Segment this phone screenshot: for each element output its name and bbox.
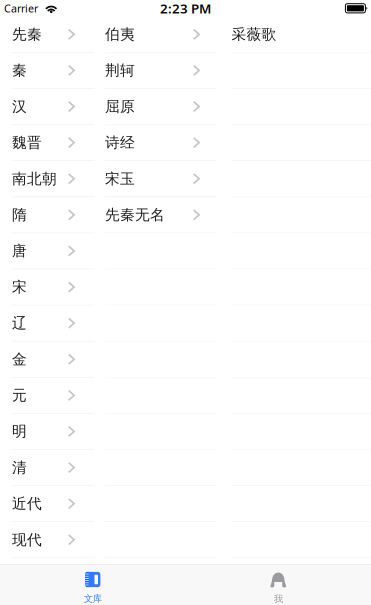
staticText: 汉 <box>12 97 27 115</box>
staticText: 伯夷 <box>105 25 135 43</box>
button[interactable]: 宋玉 <box>94 161 216 197</box>
button[interactable]: 先秦 <box>0 17 94 53</box>
staticText: 先秦无名 <box>105 206 165 224</box>
button[interactable]: 我 <box>185 565 371 605</box>
staticText: 屈原 <box>105 97 135 115</box>
staticText: 文库 <box>84 593 102 604</box>
button[interactable]: 采薇歌 <box>216 17 371 53</box>
staticText: 隋 <box>12 206 27 224</box>
staticText: 诗经 <box>105 134 135 152</box>
staticText: 魏晋 <box>12 134 42 152</box>
button[interactable]: 隋 <box>0 197 94 233</box>
staticText: 宋 <box>12 278 27 296</box>
button[interactable]: 伯夷 <box>94 17 216 53</box>
button[interactable]: 明 <box>0 414 94 450</box>
button[interactable]: 南北朝 <box>0 161 94 197</box>
button[interactable]: 魏晋 <box>0 125 94 161</box>
staticText: 2:23 PM <box>160 0 211 17</box>
staticText: 近代 <box>12 495 42 513</box>
button[interactable]: 文库 <box>0 565 185 605</box>
button[interactable]: 宋 <box>0 269 94 305</box>
staticText: 清 <box>12 458 27 476</box>
staticText: 采薇歌 <box>231 25 276 43</box>
staticText: 先秦 <box>12 25 42 43</box>
staticText: 唐 <box>12 242 27 260</box>
staticText: 我 <box>274 593 283 605</box>
staticText: 元 <box>12 386 27 404</box>
staticText: 明 <box>12 422 27 440</box>
staticText: 荆轲 <box>105 61 135 79</box>
staticText: 宋玉 <box>105 170 135 188</box>
button[interactable]: 汉 <box>0 89 94 125</box>
button[interactable]: 荆轲 <box>94 53 216 89</box>
staticText: 秦 <box>12 61 27 79</box>
button[interactable]: 辽 <box>0 305 94 341</box>
staticText: 南北朝 <box>12 170 57 188</box>
staticText: Carrier <box>4 1 38 15</box>
button[interactable]: 唐 <box>0 233 94 269</box>
button[interactable]: 元 <box>0 378 94 414</box>
button[interactable]: 屈原 <box>94 89 216 125</box>
button[interactable]: 金 <box>0 341 94 378</box>
button[interactable]: 先秦无名 <box>94 197 216 233</box>
staticText: 辽 <box>12 314 27 332</box>
staticText: 金 <box>12 350 27 368</box>
button[interactable]: 秦 <box>0 53 94 89</box>
button[interactable]: 近代 <box>0 486 94 522</box>
button[interactable]: 现代 <box>0 522 94 558</box>
button[interactable]: 诗经 <box>94 125 216 161</box>
staticText: 现代 <box>12 531 42 549</box>
button[interactable]: 清 <box>0 450 94 486</box>
